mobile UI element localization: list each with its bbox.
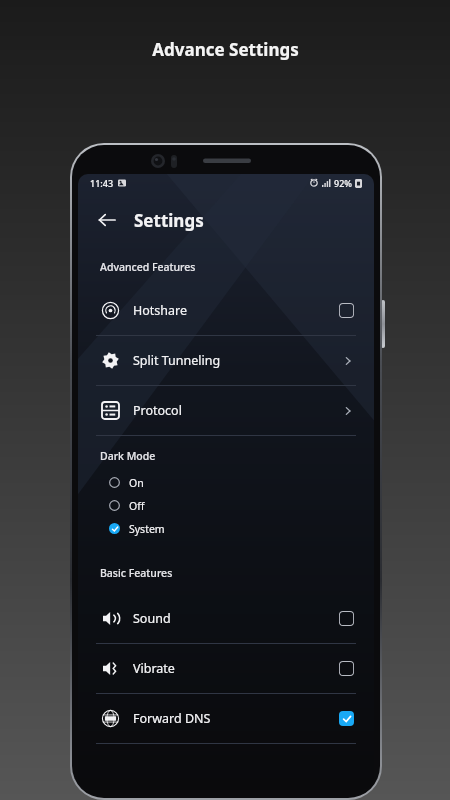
button[interactable]: Sound	[78, 594, 374, 643]
staticText: 11:43	[90, 177, 114, 189]
staticText: Advanced Features	[100, 260, 196, 274]
staticText: Settings	[134, 209, 204, 232]
button[interactable]: Hotshare	[78, 286, 374, 335]
button[interactable]: Off	[78, 494, 374, 517]
button[interactable]: Forward DNS	[78, 694, 374, 743]
button[interactable]: Forward DNS toggle	[339, 711, 354, 726]
button[interactable]: Protocol	[78, 386, 374, 435]
staticText: Advance Settings	[152, 38, 299, 61]
staticText: Off	[129, 499, 145, 513]
staticText: Basic Features	[100, 566, 173, 580]
button[interactable]: Vibrate	[78, 644, 374, 693]
button[interactable]: On	[78, 471, 374, 494]
staticText: Forward DNS	[133, 710, 211, 727]
button[interactable]: Vibrate toggle	[339, 661, 354, 676]
button[interactable]: System	[78, 517, 374, 540]
staticText: Protocol	[133, 402, 182, 419]
staticText: Hotshare	[133, 302, 188, 319]
staticText: Vibrate	[133, 660, 175, 677]
button[interactable]: Split Tunneling	[78, 336, 374, 385]
staticText: 92%	[334, 177, 352, 189]
staticText: On	[129, 476, 144, 490]
staticText: Sound	[133, 610, 171, 627]
button[interactable]: Hotshare toggle	[339, 303, 354, 318]
button[interactable]: Sound toggle	[339, 611, 354, 626]
staticText: Dark Mode	[100, 449, 156, 463]
staticText: Split Tunneling	[133, 352, 221, 369]
button[interactable]: Back	[92, 205, 122, 235]
staticText: System	[129, 522, 165, 536]
